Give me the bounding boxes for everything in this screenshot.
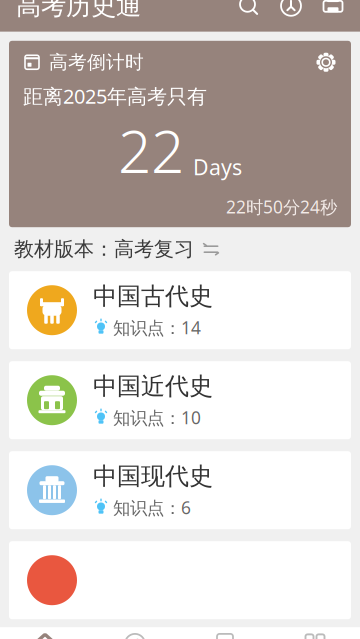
staticText: 中国现代史 [93, 461, 213, 491]
button[interactable]: 首页 [0, 627, 90, 639]
button[interactable]: 中国古代史 [9, 271, 351, 349]
staticText: 22时50分24秒 [226, 195, 337, 218]
button[interactable]: 搜索 [228, 0, 270, 31]
staticText: Days [193, 153, 242, 181]
staticText: 知识点：6 [113, 496, 191, 519]
staticText: 22 [118, 111, 184, 189]
staticText: 中国近代史 [93, 371, 213, 401]
button[interactable]: 发现 [90, 627, 180, 639]
staticText: 距离2025年高考只有 [23, 83, 207, 109]
button[interactable]: 更多 [270, 627, 360, 639]
button[interactable]: 下载 [270, 0, 312, 31]
button[interactable]: 中国现代史 [9, 451, 351, 529]
staticText: 高考历史通 [16, 0, 141, 21]
button[interactable]: 试卷 [180, 627, 270, 639]
staticText: 知识点：10 [113, 406, 201, 429]
staticText: 教材版本：高考复习 [14, 237, 194, 261]
button[interactable]: 打印 [312, 0, 354, 31]
button[interactable]: 高考倒计时 [9, 41, 351, 227]
button[interactable]: 中国近代史 [9, 361, 351, 439]
staticText: 高考倒计时 [49, 51, 144, 74]
button[interactable]: 教材版本：高考复习 [0, 227, 360, 271]
staticText: 知识点：14 [113, 316, 201, 339]
staticText: 中国古代史 [93, 281, 213, 311]
